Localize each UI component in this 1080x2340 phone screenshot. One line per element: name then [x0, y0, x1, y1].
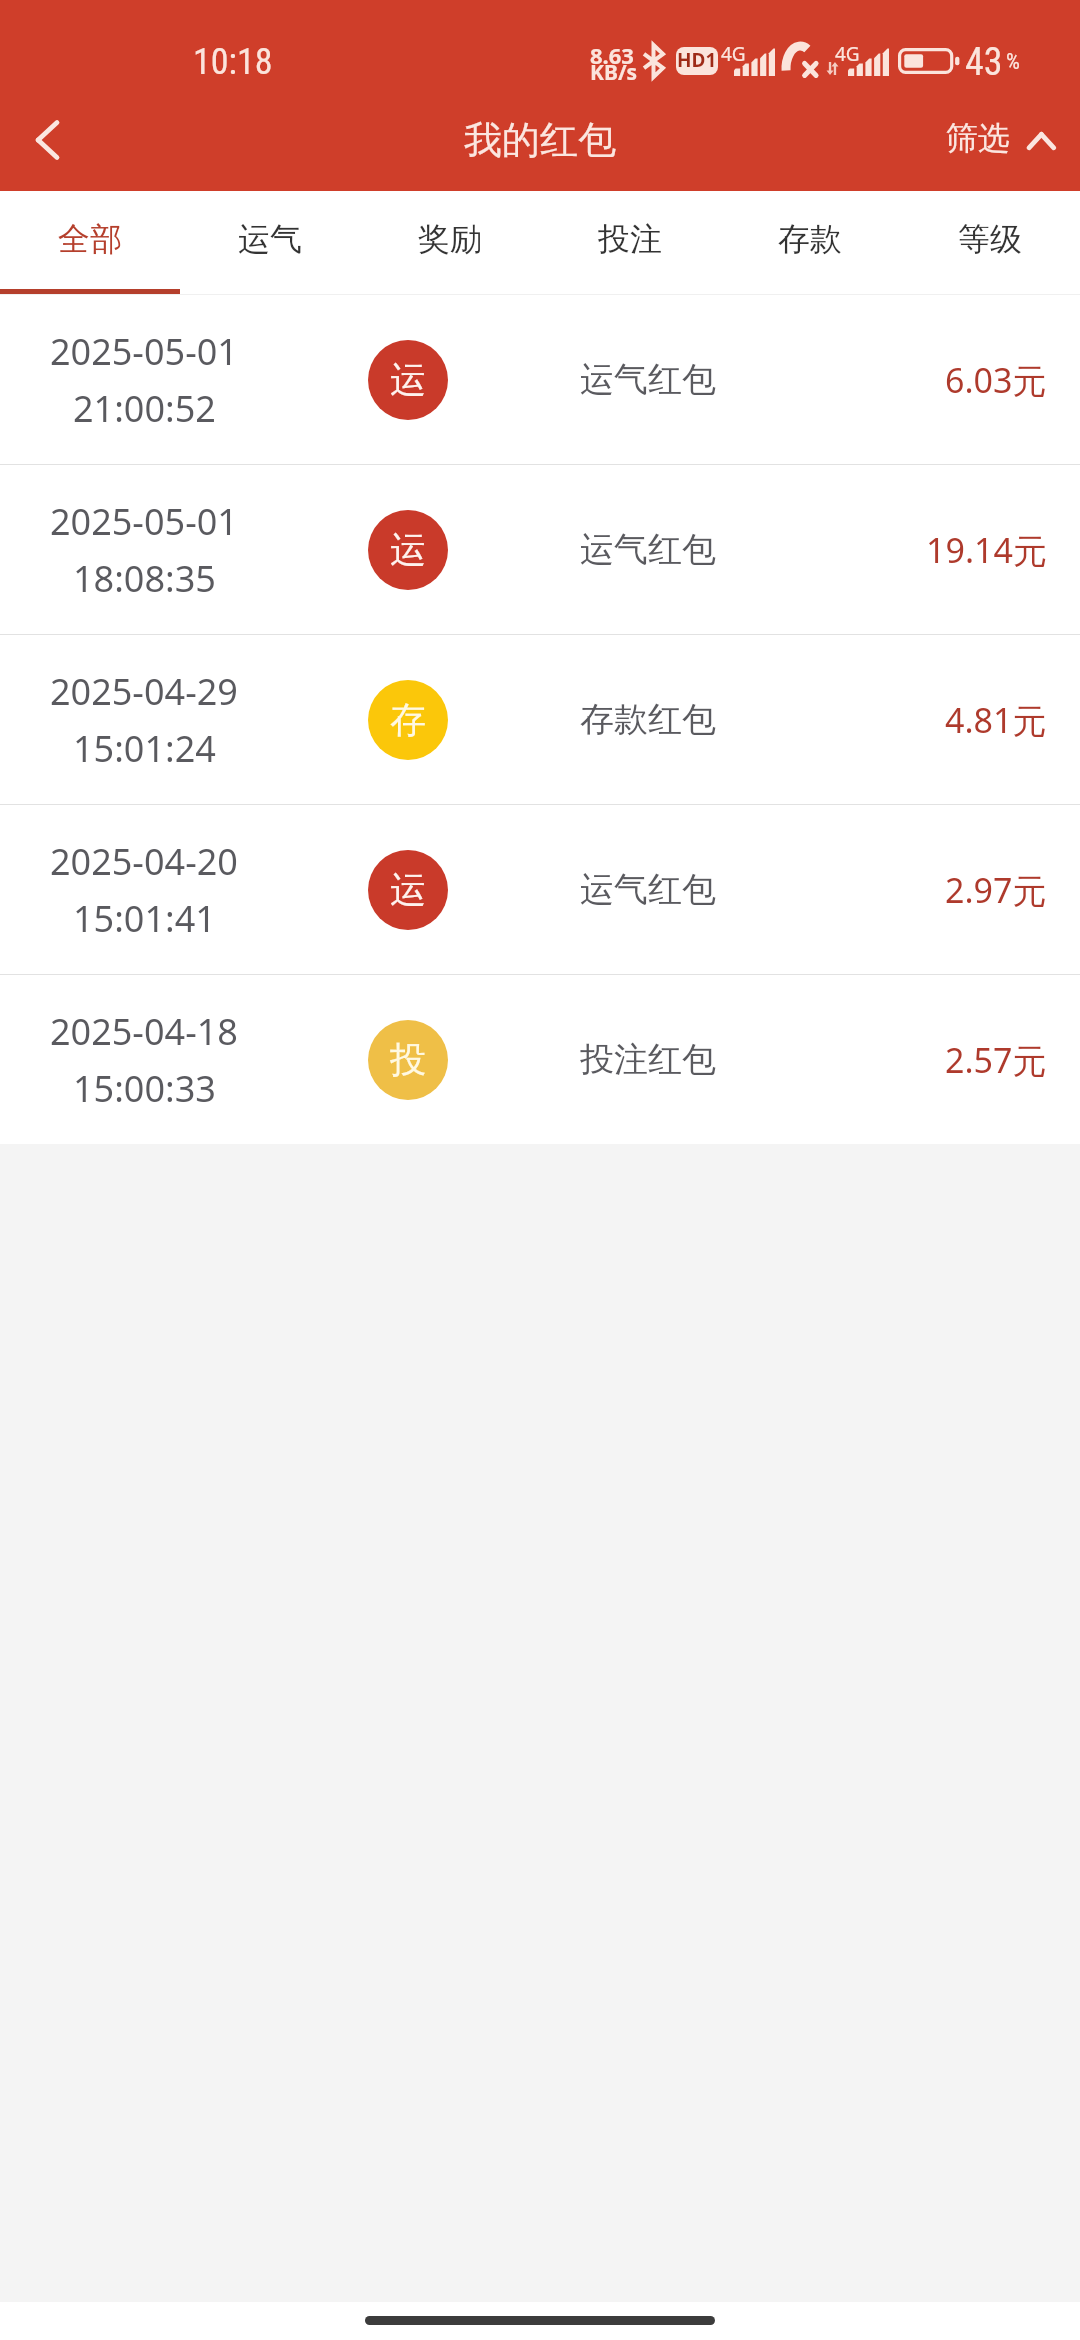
- staticText: 运: [390, 867, 426, 912]
- button[interactable]: 2025-04-29: [0, 635, 1080, 804]
- staticText: 运气: [238, 219, 302, 259]
- staticText: 2.57元: [945, 1037, 1047, 1083]
- staticText: 存: [390, 697, 426, 742]
- button[interactable]: 奖励: [360, 191, 540, 295]
- staticText: 2025-05-01: [50, 327, 238, 376]
- staticText: 存款: [778, 219, 842, 259]
- staticText: 2025-05-01: [50, 497, 238, 546]
- staticText: 4G: [835, 41, 860, 67]
- staticText: %: [1006, 49, 1020, 75]
- staticText: 我的红包: [464, 116, 616, 164]
- staticText: 运气红包: [580, 868, 716, 911]
- staticText: 10:18: [193, 41, 273, 83]
- staticText: 全部: [58, 219, 122, 259]
- staticText: 4.81元: [945, 697, 1047, 743]
- staticText: 运: [390, 527, 426, 572]
- staticText: 4G: [721, 41, 746, 67]
- staticText: 8.63: [590, 40, 634, 70]
- staticText: 2025-04-20: [50, 837, 238, 886]
- staticText: 等级: [958, 219, 1022, 259]
- button[interactable]: 2025-05-01: [0, 465, 1080, 634]
- staticText: 19.14元: [926, 527, 1047, 573]
- staticText: 43: [965, 40, 1003, 85]
- staticText: 15:00:33: [73, 1064, 216, 1113]
- button[interactable]: 全部: [0, 191, 180, 295]
- button[interactable]: 投注: [540, 191, 720, 295]
- staticText: 18:08:35: [73, 554, 216, 603]
- staticText: 21:00:52: [73, 384, 216, 433]
- staticText: 2025-04-18: [50, 1007, 238, 1056]
- staticText: 投注: [598, 219, 662, 259]
- staticText: 15:01:41: [73, 894, 216, 943]
- button[interactable]: 筛选: [945, 100, 1080, 180]
- button[interactable]: 等级: [900, 191, 1080, 295]
- staticText: 投: [390, 1037, 426, 1082]
- staticText: HD1: [677, 47, 717, 73]
- staticText: 运气红包: [580, 358, 716, 401]
- staticText: 运气红包: [580, 528, 716, 571]
- staticText: 存款红包: [580, 698, 716, 741]
- staticText: 2.97元: [945, 867, 1047, 913]
- staticText: 运: [390, 357, 426, 402]
- staticText: KB/s: [590, 58, 638, 87]
- staticText: 2025-04-29: [50, 667, 238, 716]
- button[interactable]: 2025-04-18: [0, 975, 1080, 1144]
- button[interactable]: 2025-04-20: [0, 805, 1080, 974]
- staticText: 奖励: [418, 219, 482, 259]
- button[interactable]: Back: [0, 97, 95, 183]
- staticText: 投注红包: [580, 1038, 716, 1081]
- staticText: 15:01:24: [73, 724, 216, 773]
- staticText: 筛选: [946, 118, 1010, 158]
- button[interactable]: 2025-05-01: [0, 295, 1080, 464]
- button[interactable]: 存款: [720, 191, 900, 295]
- staticText: 6.03元: [945, 357, 1047, 403]
- button[interactable]: 运气: [180, 191, 360, 295]
